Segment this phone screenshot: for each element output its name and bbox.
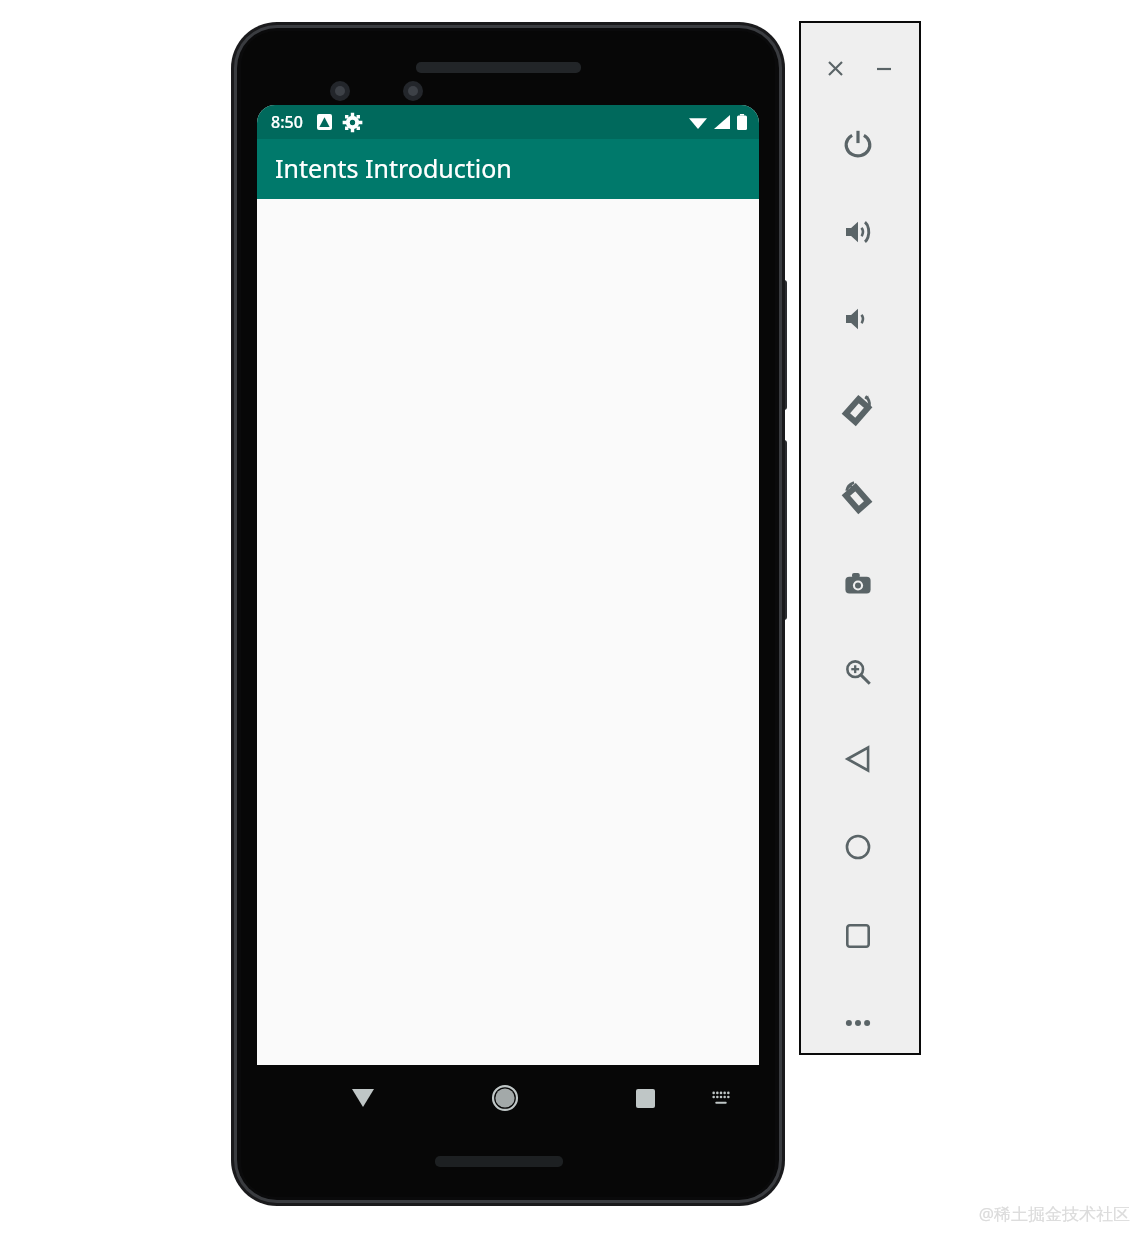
button[interactable]: Zoom [834, 648, 882, 696]
button[interactable]: Overview [834, 912, 882, 960]
button[interactable]: Power [834, 120, 882, 168]
staticText: Intents Introduction [275, 151, 512, 185]
staticText: @稀土掘金技术社区 [978, 1202, 1130, 1225]
button[interactable]: Take screenshot [834, 560, 882, 608]
button[interactable]: Keyboard [699, 1076, 743, 1120]
button[interactable]: Volume down [834, 295, 882, 343]
staticText: 8:50 [271, 111, 303, 133]
button[interactable]: Back [341, 1076, 385, 1120]
button[interactable]: Rotate right [834, 472, 882, 520]
button[interactable]: Recent apps [623, 1076, 667, 1120]
button[interactable]: Minimize [870, 55, 897, 82]
button[interactable]: Home [483, 1076, 527, 1120]
button[interactable]: Volume up [834, 208, 882, 256]
button[interactable]: Intents Introduction [257, 139, 759, 199]
button[interactable]: Rotate left [834, 384, 882, 432]
button[interactable]: Home [834, 823, 882, 871]
button[interactable]: Back [834, 735, 882, 783]
button[interactable]: Close [822, 55, 849, 82]
button[interactable]: More [834, 999, 882, 1047]
